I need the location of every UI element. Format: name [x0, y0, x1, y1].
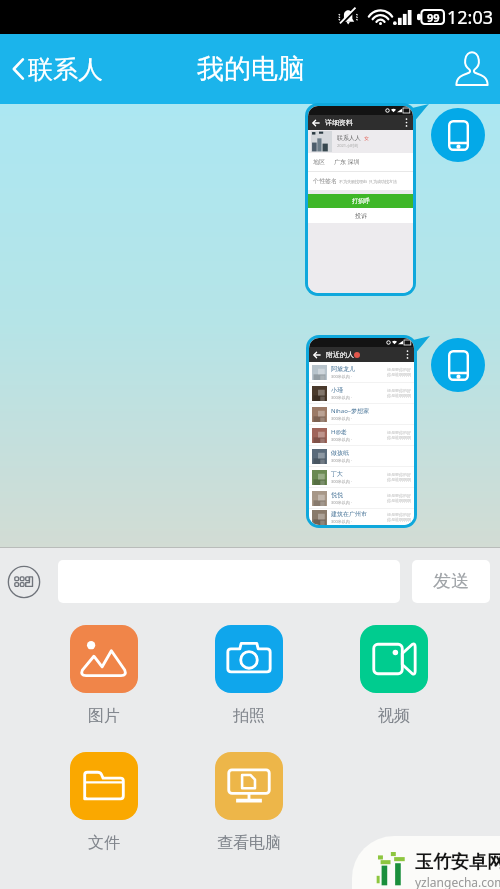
- staticText: 地区: [313, 158, 325, 166]
- button[interactable]: Emoji keyboard: [7, 565, 41, 599]
- staticText: 小瑾: [331, 386, 343, 394]
- staticText: 还是要你的好: [387, 430, 411, 435]
- staticText: 广东 深圳: [334, 158, 360, 166]
- staticText: 拍照: [233, 706, 265, 726]
- staticText: 还是要你的好: [387, 388, 411, 393]
- staticText: 图片: [88, 706, 120, 726]
- staticText: Nihao~梦想家: [331, 407, 370, 415]
- staticText: 还是要你的好: [387, 512, 411, 517]
- button[interactable]: 附近的人: [309, 338, 414, 525]
- staticText: 12:03: [447, 5, 494, 30]
- staticText: 不为失败找理由 只为成功找方法: [339, 179, 398, 184]
- staticText: 建筑在广州市: [331, 510, 367, 518]
- staticText: 300米以内 ·: [331, 519, 352, 524]
- staticText: 联系人人: [337, 134, 361, 142]
- button[interactable]: 拍照: [215, 625, 283, 726]
- staticText: 还是要你的好: [387, 493, 411, 498]
- staticText: 你是谁啊啊啊: [387, 477, 411, 482]
- button[interactable]: 详细资料: [308, 106, 413, 293]
- staticText: 你是谁啊啊啊: [387, 517, 411, 522]
- staticText: 做孩纸: [331, 449, 349, 457]
- staticText: 我的电脑: [197, 52, 305, 86]
- staticText: 300米以内 ·: [331, 437, 352, 442]
- staticText: 女: [364, 135, 369, 141]
- staticText: 玉竹安卓网: [415, 851, 500, 874]
- staticText: 视频: [378, 706, 410, 726]
- staticText: 300米以内 ·: [331, 395, 352, 400]
- staticText: 300米以内 ·: [331, 374, 352, 379]
- button[interactable]: Computer avatar: [431, 338, 485, 392]
- staticText: 投诉: [355, 212, 367, 220]
- button[interactable]: 查看电脑: [215, 752, 283, 853]
- staticText: 联系人: [28, 54, 103, 85]
- button[interactable]: 联系人: [11, 34, 103, 104]
- staticText: 发送: [433, 570, 469, 593]
- staticText: 你是谁啊啊啊: [387, 372, 411, 377]
- staticText: 你是谁啊啊啊: [387, 393, 411, 398]
- button[interactable]: 视频: [360, 625, 428, 726]
- staticText: 查看电脑: [217, 833, 281, 853]
- button[interactable]: 图片: [70, 625, 138, 726]
- staticText: 附近的人: [326, 350, 354, 359]
- staticText: 2021小时前: [337, 143, 359, 148]
- staticText: 悦悦: [331, 491, 343, 499]
- staticText: 300米以内 ·: [331, 416, 352, 421]
- button[interactable]: Profile: [444, 34, 500, 104]
- staticText: 还是要你的好: [387, 367, 411, 372]
- button[interactable]: 发送: [412, 560, 490, 603]
- staticText: 阿黛龙儿: [331, 365, 355, 373]
- button[interactable]: 文件: [70, 752, 138, 853]
- button[interactable]: Computer avatar: [431, 108, 485, 162]
- staticText: 99: [427, 10, 440, 25]
- staticText: 丁大: [331, 470, 343, 478]
- staticText: 还是要你的好: [387, 472, 411, 477]
- staticText: yzlangecha.com: [415, 874, 500, 889]
- staticText: 打招呼: [352, 197, 370, 205]
- staticText: 300米以内 ·: [331, 479, 352, 484]
- staticText: 你是谁啊啊啊: [387, 435, 411, 440]
- staticText: 300米以内 ·: [331, 500, 352, 505]
- staticText: H@老: [331, 428, 347, 436]
- staticText: 个性签名: [313, 177, 337, 185]
- staticText: 详细资料: [325, 118, 353, 127]
- staticText: 300米以内 ·: [331, 458, 352, 463]
- staticText: 文件: [88, 833, 120, 853]
- staticText: 你是谁啊啊啊: [387, 498, 411, 503]
